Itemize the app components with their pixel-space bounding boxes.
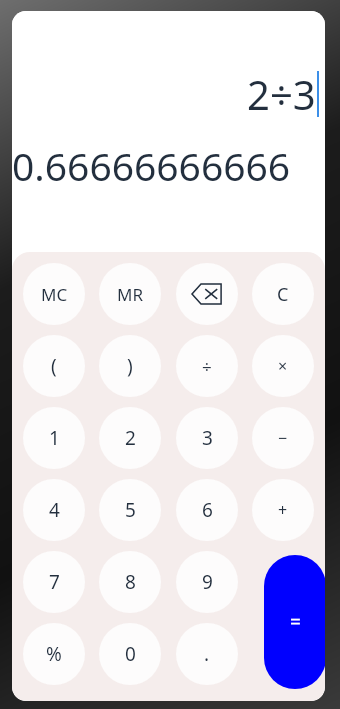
button[interactable]: = [264,555,325,689]
staticText: 7 [49,569,60,595]
staticText: 2 [125,425,136,451]
staticText: − [278,427,288,449]
staticText: 1 [49,425,60,451]
button[interactable]: 5 [99,479,161,541]
staticText: 0 [125,641,136,667]
staticText: 3 [202,425,213,451]
button[interactable]: 1 [23,407,85,469]
staticText: 0.66666666666 [12,139,291,192]
staticText: 8 [125,569,136,595]
staticText: MC [41,283,68,306]
button[interactable]: ( [23,335,85,397]
staticText: ÷ [202,355,212,378]
staticText: 2÷3 [247,67,316,121]
button[interactable]: MC [23,263,85,325]
button[interactable]: 4 [23,479,85,541]
staticText: 4 [49,497,60,523]
button[interactable]: % [23,623,85,685]
staticText: ) [127,353,133,379]
button[interactable]: 2 [99,407,161,469]
button[interactable]: C [252,263,314,325]
staticText: × [278,355,288,377]
button[interactable]: 9 [176,551,238,613]
staticText: + [278,499,288,521]
button[interactable]: ) [99,335,161,397]
button[interactable]: + [252,479,314,541]
button[interactable]: 6 [176,479,238,541]
button[interactable]: ÷ [176,335,238,397]
staticText: . [204,641,210,667]
staticText: C [277,282,289,307]
button[interactable]: 8 [99,551,161,613]
staticText: % [46,641,62,667]
staticText: 5 [125,497,136,523]
button[interactable]: Backspace [176,263,238,325]
button[interactable]: × [252,335,314,397]
staticText: = [290,609,301,635]
staticText: 9 [202,569,213,595]
staticText: 6 [202,497,213,523]
button[interactable]: MR [99,263,161,325]
button[interactable]: 3 [176,407,238,469]
button[interactable]: − [252,407,314,469]
button[interactable]: 7 [23,551,85,613]
button[interactable]: . [176,623,238,685]
button[interactable]: 0 [99,623,161,685]
staticText: ( [51,353,57,379]
staticText: MR [117,283,143,306]
